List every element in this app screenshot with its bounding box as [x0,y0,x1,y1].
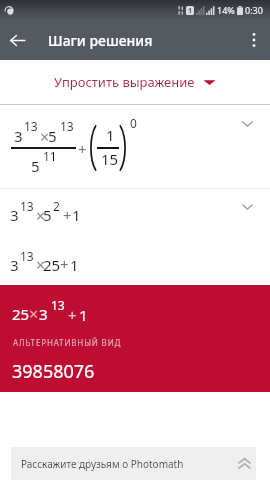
staticText: 25 [12,304,30,324]
other: Expand [237,456,252,471]
button[interactable]: 3 [0,105,270,188]
staticText: 1 [79,305,88,325]
staticText: 5 [43,205,52,225]
staticText: 15 [101,149,119,169]
staticText: 13 [20,248,34,264]
staticText: 13 [51,297,65,313]
staticText: + [78,139,87,159]
staticText: × [36,205,46,227]
staticText: × [29,303,39,325]
button[interactable]: More options [239,25,269,55]
staticText: 13 [20,198,34,214]
button[interactable]: 3 [0,237,270,285]
staticText: 25 [43,255,61,275]
staticText: 5 [48,126,57,146]
staticText: 1 [72,205,81,225]
staticText: Упростить выражение [54,73,195,91]
staticText: Шаги решения [48,31,153,50]
staticText: + [63,205,72,225]
staticText: АЛЬТЕРНАТИВНЫЙ ВИД [13,337,122,348]
staticText: 1 [188,6,193,15]
button[interactable]: 25 [0,285,270,392]
other: Expand step [242,202,253,212]
staticText: 13 [24,118,38,134]
staticText: 3 [10,205,19,225]
staticText: + [68,305,77,325]
staticText: 11 [43,148,57,164]
staticText: 0 [130,115,137,131]
button[interactable]: Back [0,23,34,57]
staticText: × [40,126,50,148]
button[interactable]: Расскажите друзьям о Photomath [11,447,256,480]
staticText: 14% [217,4,235,16]
button[interactable]: Упростить выражение [0,60,270,104]
staticText: + [60,254,69,274]
staticText: 5 [31,156,40,176]
staticText: 13 [60,118,74,134]
other: Expand step [242,119,253,129]
button[interactable]: 3 [0,189,270,237]
staticText: 3 [39,304,48,324]
staticText: Расскажите друзьям о Photomath [21,457,184,471]
staticText: 3 [14,126,23,146]
staticText: 1 [70,255,79,275]
staticText: 0:30 [245,4,263,16]
staticText: × [36,254,46,276]
staticText: 1 [106,125,115,145]
staticText: 3 [10,255,19,275]
staticText: 2 [53,198,60,214]
staticText: 39858076 [12,359,95,384]
